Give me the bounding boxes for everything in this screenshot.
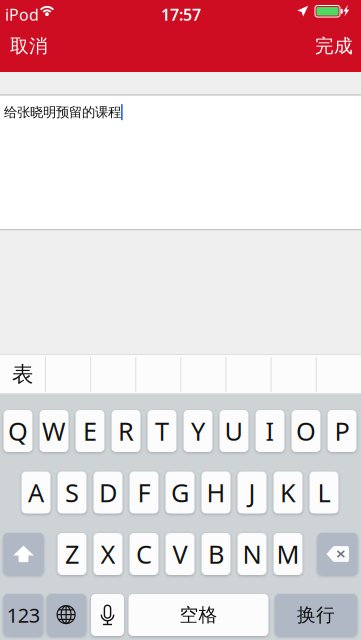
button[interactable]: R [111, 410, 140, 452]
staticText: O [296, 414, 316, 448]
button[interactable]: 表 [0, 355, 45, 394]
staticText: Z [65, 537, 79, 571]
button[interactable]: 换行 [275, 594, 357, 636]
button[interactable]: Shift [3, 533, 43, 575]
staticText: Q [8, 414, 28, 448]
staticText: 换行 [297, 603, 335, 626]
staticText: iPod [5, 4, 39, 25]
button[interactable]: I [255, 410, 284, 452]
button[interactable]: 完成 [297, 24, 361, 68]
staticText: K [280, 476, 296, 509]
staticText: Y [191, 414, 205, 448]
button[interactable]: T [147, 410, 176, 452]
button[interactable]: D [93, 471, 122, 513]
staticText: J [248, 476, 255, 509]
button[interactable]: Dictation [91, 594, 124, 636]
button[interactable]: 123 [3, 594, 43, 636]
staticText: S [65, 476, 79, 509]
button[interactable]: P [327, 410, 356, 452]
button[interactable]: Q [3, 410, 32, 452]
staticText: H [206, 476, 225, 509]
button[interactable]: H [201, 471, 230, 513]
button[interactable]: B [201, 533, 230, 575]
button[interactable]: S [57, 471, 86, 513]
button[interactable]: L [309, 471, 338, 513]
staticText: F [137, 476, 150, 509]
button[interactable]: Z [57, 533, 86, 575]
staticText: C [136, 537, 152, 571]
staticText: V [172, 537, 187, 571]
staticText: M [276, 537, 299, 571]
staticText: P [334, 414, 349, 448]
staticText: E [83, 414, 97, 448]
staticText: L [317, 476, 330, 509]
staticText: B [208, 537, 224, 571]
staticText: 17:57 [161, 4, 201, 25]
staticText: 给张晓明预留的课程 [4, 104, 121, 120]
staticText: T [155, 414, 169, 448]
staticText: 123 [7, 602, 40, 628]
button[interactable]: U [219, 410, 248, 452]
button[interactable]: Delete [317, 533, 357, 575]
button[interactable]: E [75, 410, 104, 452]
button[interactable]: 取消 [0, 24, 66, 68]
button[interactable]: J [237, 471, 266, 513]
button[interactable]: G [165, 471, 194, 513]
staticText: 取消 [10, 34, 48, 57]
button[interactable]: A [21, 471, 50, 513]
staticText: R [118, 414, 134, 448]
staticText: D [99, 476, 117, 509]
button[interactable]: Y [183, 410, 212, 452]
staticText: G [171, 476, 189, 509]
staticText: I [265, 414, 274, 448]
button[interactable]: N [237, 533, 266, 575]
staticText: N [242, 537, 261, 571]
button[interactable]: V [165, 533, 194, 575]
button[interactable]: O [291, 410, 320, 452]
button[interactable]: 空格 [128, 594, 268, 636]
staticText: 表 [12, 361, 33, 388]
button[interactable]: M [273, 533, 302, 575]
staticText: U [224, 414, 243, 448]
button[interactable]: F [129, 471, 158, 513]
button[interactable]: X [93, 533, 122, 575]
button[interactable]: Next keyboard [47, 594, 86, 636]
staticText: 空格 [179, 603, 217, 626]
button[interactable]: C [129, 533, 158, 575]
button[interactable]: W [39, 410, 68, 452]
staticText: W [42, 414, 66, 448]
button[interactable]: K [273, 471, 302, 513]
staticText: X [100, 537, 115, 571]
staticText: A [28, 476, 44, 509]
staticText: 完成 [315, 34, 353, 57]
